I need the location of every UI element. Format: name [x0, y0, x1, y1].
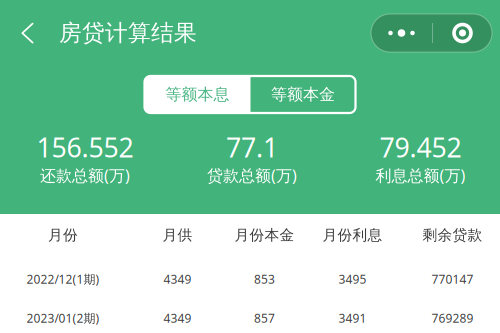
staticText: 3491	[338, 310, 366, 326]
button[interactable]: More	[371, 14, 432, 52]
button[interactable]: Back	[0, 11, 34, 55]
staticText: 857	[254, 310, 275, 326]
staticText: 853	[254, 271, 275, 287]
staticText: 月份本金	[234, 226, 294, 244]
staticText: 2022/12(1期)	[26, 271, 99, 287]
staticText: 剩余贷款	[422, 226, 482, 244]
staticText: 月份利息	[322, 226, 382, 244]
staticText: 770147	[431, 271, 473, 287]
staticText: 4349	[163, 271, 191, 287]
staticText: 房贷计算结果	[59, 19, 197, 47]
staticText: 4349	[163, 310, 191, 326]
staticText: 769289	[431, 310, 473, 326]
staticText: 等额本金	[271, 85, 335, 104]
staticText: 月份	[48, 226, 78, 244]
staticText: 月供	[162, 226, 192, 244]
staticText: 2023/01(2期)	[26, 310, 99, 326]
staticText: 贷款总额(万)	[207, 165, 297, 186]
staticText: 77.1	[226, 129, 278, 165]
staticText: 156.552	[36, 129, 133, 165]
button[interactable]: Close	[433, 14, 492, 52]
button[interactable]: 等额本息	[144, 76, 250, 113]
button[interactable]: 等额本金	[250, 76, 355, 113]
staticText: 3495	[338, 271, 366, 287]
staticText: 等额本息	[165, 85, 229, 104]
staticText: 79.452	[379, 129, 461, 165]
staticText: 利息总额(万)	[375, 165, 465, 186]
staticText: 还款总额(万)	[40, 165, 130, 186]
